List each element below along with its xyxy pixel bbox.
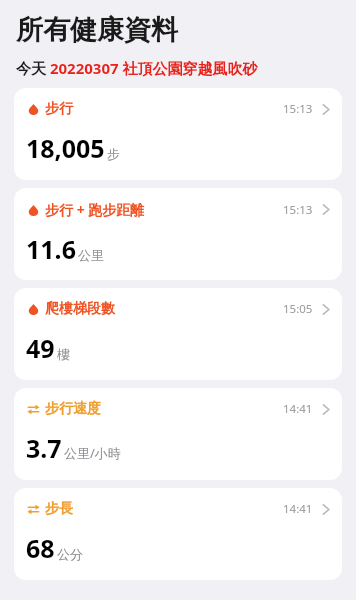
staticText: 49 [26, 331, 55, 365]
staticText: 爬樓梯段數 [45, 300, 115, 318]
staticText: 15:13 [283, 101, 313, 117]
button[interactable]: 步長 [14, 488, 342, 580]
staticText: 15:13 [283, 202, 313, 218]
staticText: 步行 + 跑步距離 [45, 200, 145, 219]
staticText: 樓 [57, 346, 70, 362]
staticText: 11.6 [26, 232, 76, 266]
staticText: 步行 [45, 100, 73, 118]
staticText: 18,005 [26, 131, 105, 165]
staticText: 公里/小時 [64, 444, 121, 462]
staticText: 公里 [78, 247, 104, 263]
staticText: 15:05 [283, 301, 313, 317]
staticText: 公分 [57, 546, 83, 562]
staticText: 步 [107, 146, 120, 162]
button[interactable]: 步行 + 跑步距離 [14, 188, 342, 280]
button[interactable]: 步行 [14, 88, 342, 180]
staticText: 3.7 [26, 431, 62, 465]
staticText: 14:41 [283, 501, 313, 517]
staticText: 14:41 [283, 401, 313, 417]
button[interactable]: 步行速度 [14, 388, 342, 480]
staticText: 所有健康資料 [16, 13, 178, 47]
staticText: 68 [26, 531, 55, 565]
button[interactable]: 爬樓梯段數 [14, 288, 342, 380]
staticText: 步行速度 [45, 400, 101, 418]
staticText: 今天 20220307 社頂公園穿越風吹砂 [16, 58, 258, 78]
staticText: 步長 [45, 500, 73, 518]
